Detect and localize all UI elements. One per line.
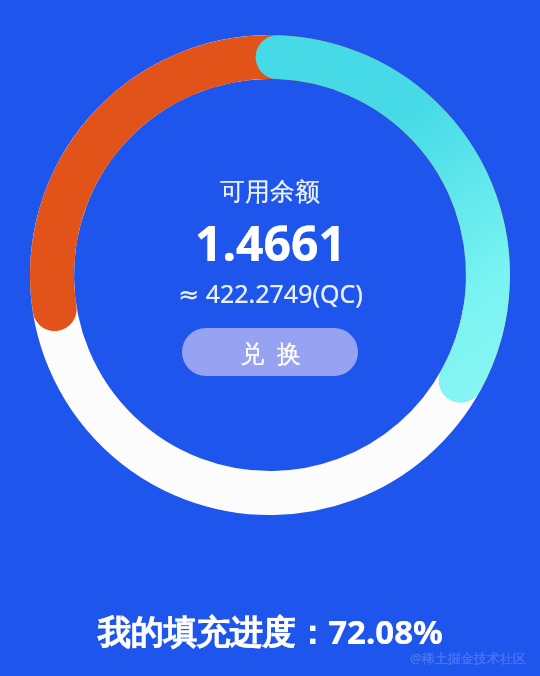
staticText: 我的填充进度：72.08%: [97, 609, 443, 654]
staticText: ≈ 422.2749(QC): [178, 276, 363, 310]
button[interactable]: 兑 换: [182, 328, 358, 376]
staticText: 兑 换: [240, 336, 301, 369]
staticText: 1.4661: [195, 210, 346, 275]
staticText: @稀土掘金技术社区: [410, 649, 526, 667]
staticText: 可用余额: [220, 176, 320, 207]
